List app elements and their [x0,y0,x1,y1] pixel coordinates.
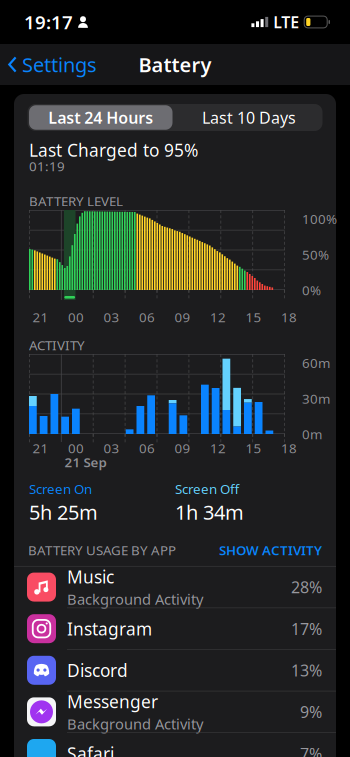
staticText: Battery [138,51,211,78]
staticText: 15 [245,308,261,326]
staticText: 06 [139,439,155,457]
staticText: 12 [210,308,226,326]
staticText: 0% [302,281,321,299]
staticText: Background Activity [67,589,203,609]
staticText: 17% [291,618,322,639]
staticText: Instagram [67,617,152,640]
staticText: 30m [302,390,330,407]
staticText: 01:19 [29,157,65,175]
staticText: BATTERY USAGE BY APP [28,541,176,559]
staticText: 100% [302,210,337,228]
button[interactable]: Last 10 Days [175,104,322,131]
staticText: Last 10 Days [202,107,296,128]
staticText: 03 [103,308,119,326]
staticText: Last Charged to 95% [29,138,198,161]
staticText: Discord [67,659,128,682]
staticText: 09 [174,308,190,326]
staticText: 5h 25m [29,499,98,525]
staticText: 9% [300,701,322,722]
staticText: Messenger [67,690,158,713]
button[interactable]: Discord [14,650,336,691]
staticText: 0m [302,425,322,443]
button[interactable]: Instagram [14,608,336,649]
staticText: 50% [302,246,329,263]
button[interactable]: Settings [0,45,105,83]
staticText: 7% [300,743,322,757]
staticText: LTE [273,11,299,33]
staticText: 15 [245,439,261,457]
staticText: 06 [139,308,155,326]
staticText: 1h 34m [175,499,244,525]
button[interactable]: Last 24 Hours [27,105,172,130]
staticText: 03 [103,439,119,457]
staticText: Background Activity [67,714,203,734]
button[interactable]: SHOW ACTIVITY [219,541,322,559]
staticText: BATTERY LEVEL [29,192,123,210]
staticText: Settings [22,51,97,78]
staticText: Music [67,565,114,588]
staticText: Screen On [29,480,92,498]
staticText: 13% [291,660,322,681]
staticText: Screen Off [175,480,239,498]
staticText: 28% [291,576,322,598]
staticText: 19:17 [24,10,73,34]
staticText: 60m [302,354,330,372]
staticText: 00 [68,439,84,457]
button[interactable]: Messenger [14,691,336,732]
staticText: 21 [32,439,48,457]
staticText: 00 [68,308,84,326]
staticText: 21 [32,308,48,326]
button[interactable]: Music [14,567,336,608]
staticText: Last 24 Hours [48,107,153,128]
staticText: 18 [281,439,297,457]
staticText: 18 [281,308,297,326]
staticText: 21 Sep [64,453,106,471]
staticText: ACTIVITY [29,336,85,354]
staticText: 09 [174,439,190,457]
staticText: 12 [210,439,226,457]
button[interactable]: Safari [14,733,336,757]
staticText: SHOW ACTIVITY [219,541,322,559]
staticText: Safari [67,742,114,757]
